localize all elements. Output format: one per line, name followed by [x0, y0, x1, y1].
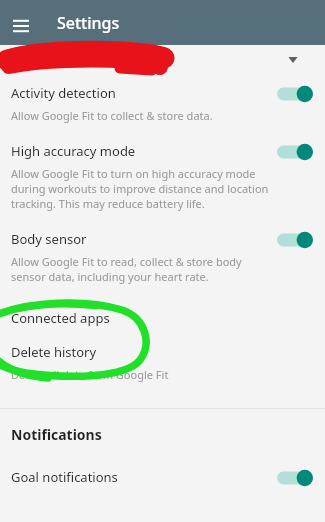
- button[interactable]: Toggle: [275, 465, 315, 491]
- button[interactable]: Delete history: [0, 339, 325, 394]
- button[interactable]: Toggle: [275, 81, 315, 107]
- button[interactable]: Goal notifications: [0, 466, 325, 502]
- button[interactable]: Toggle: [275, 139, 315, 165]
- staticText: Connected apps: [11, 309, 110, 327]
- staticText: Delete history: [11, 343, 97, 361]
- staticText: Delete all data from Google Fit: [11, 367, 169, 382]
- staticText: Allow Google Fit to collect & store data…: [11, 108, 213, 123]
- staticText: Settings: [57, 12, 120, 34]
- button[interactable]: Open navigation menu: [6, 11, 36, 41]
- button[interactable]: Expand account selector: [281, 48, 305, 72]
- staticText: Allow Google Fit to turn on high accurac…: [11, 166, 269, 211]
- staticText: Activity detection: [11, 84, 116, 102]
- staticText: High accuracy mode: [11, 142, 136, 160]
- button[interactable]: Connected apps: [0, 300, 325, 339]
- button[interactable]: Body sensor: [0, 225, 325, 300]
- button[interactable]: Activity detection: [0, 75, 325, 137]
- button[interactable]: Toggle: [275, 227, 315, 253]
- staticText: Goal notifications: [11, 468, 118, 486]
- staticText: Notifications: [11, 425, 102, 444]
- staticText: Body sensor: [11, 230, 87, 248]
- button[interactable]: High accuracy mode: [0, 137, 325, 225]
- staticText: Allow Google Fit to read, collect & stor…: [11, 254, 269, 284]
